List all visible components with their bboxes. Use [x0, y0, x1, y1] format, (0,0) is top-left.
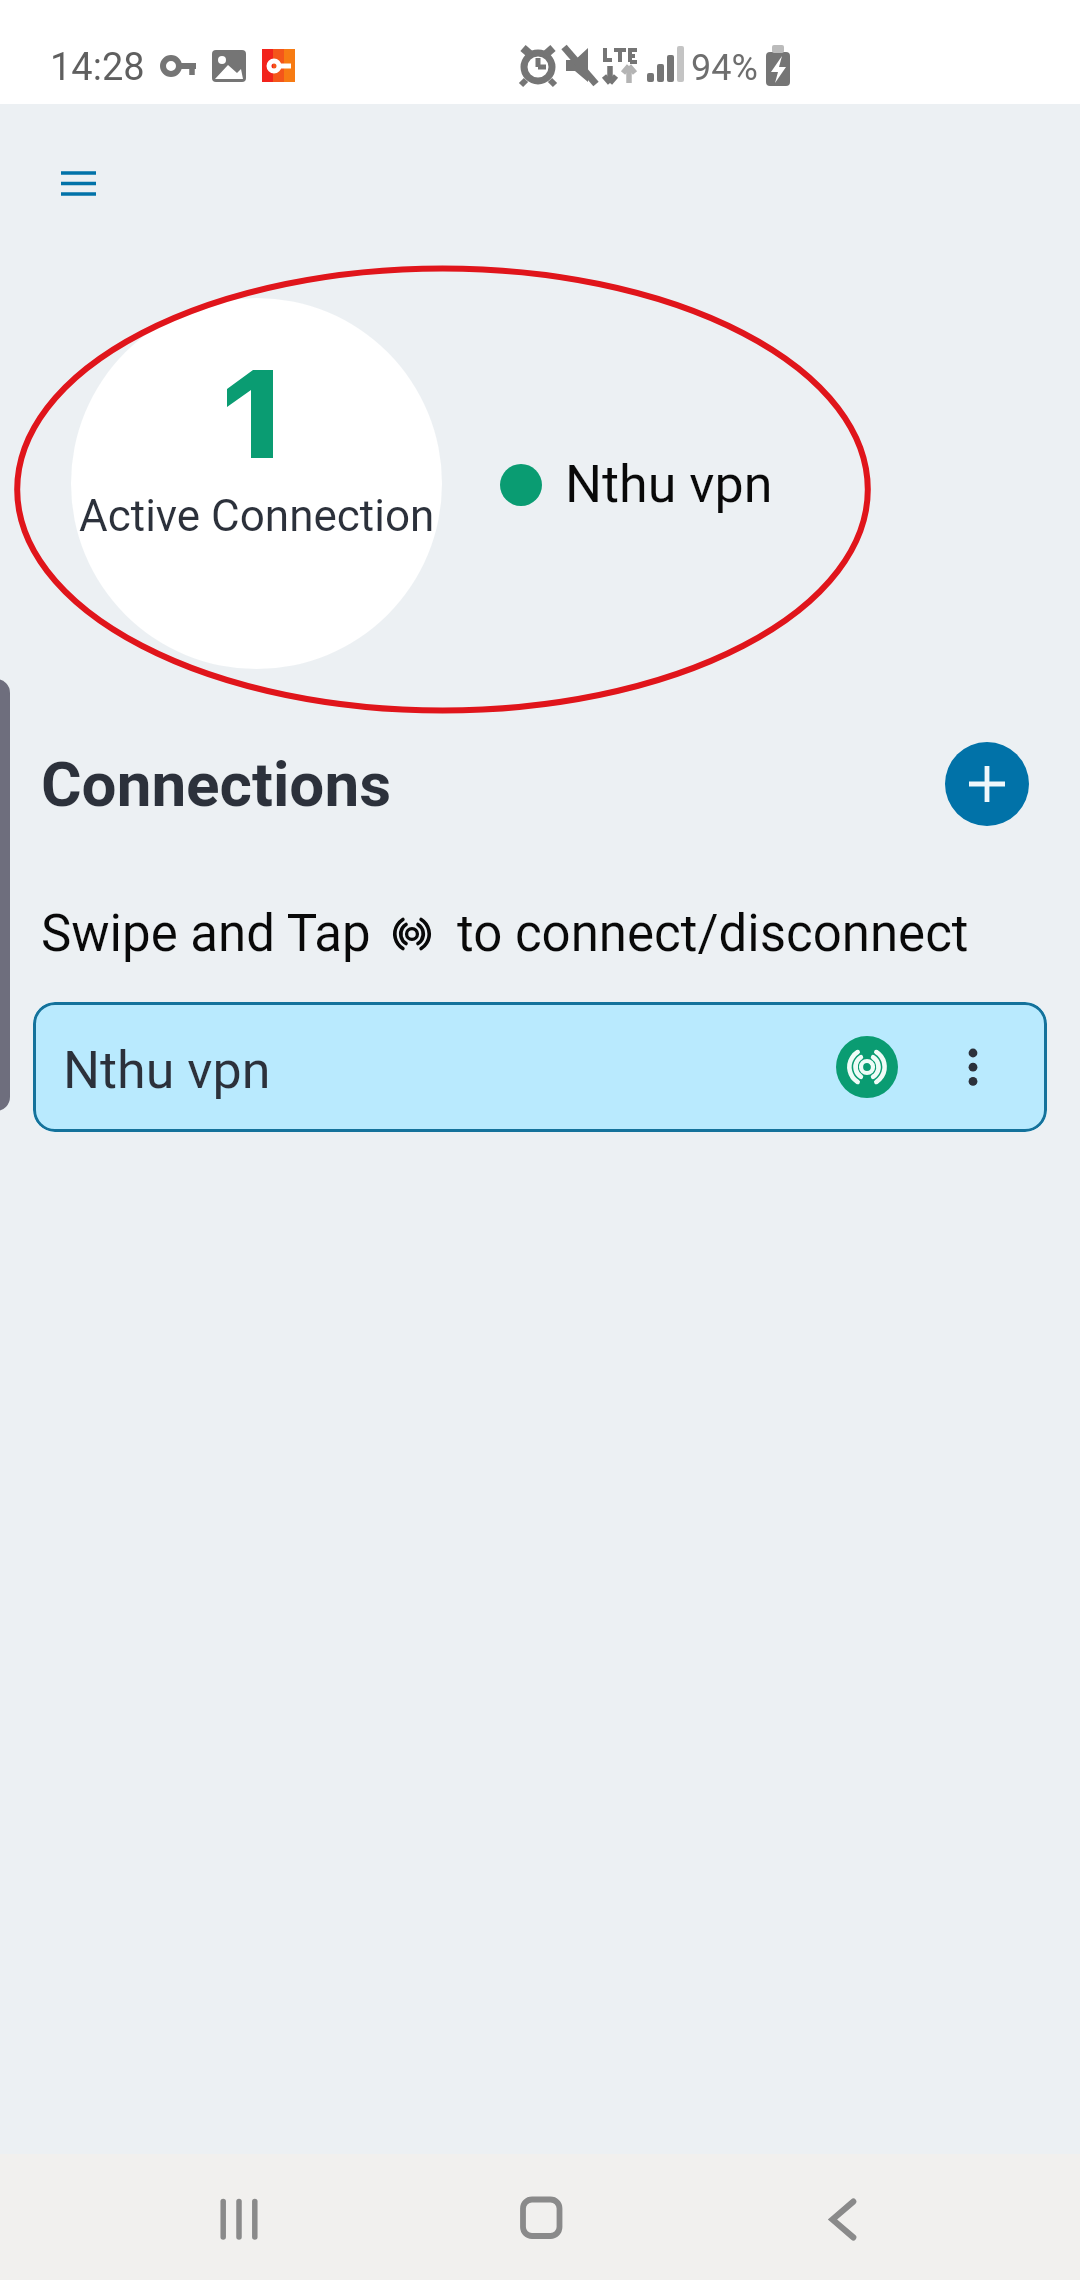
- button[interactable]: Home: [481, 2174, 601, 2260]
- staticText: Connections: [41, 748, 392, 821]
- staticText: 94%: [691, 47, 758, 89]
- staticText: 14:28: [50, 45, 145, 90]
- staticText: Swipe and Tap: [41, 904, 371, 964]
- staticText: Nthu vpn: [565, 454, 773, 515]
- button[interactable]: Open navigation menu: [37, 144, 121, 228]
- button[interactable]: Back: [783, 2174, 903, 2260]
- button[interactable]: Toggle connection: [836, 1036, 898, 1098]
- button[interactable]: Add connection: [945, 742, 1029, 826]
- staticText: Active Connection: [79, 490, 435, 542]
- button[interactable]: Nthu vpn: [33, 1002, 1047, 1132]
- staticText: to connect/disconnect: [457, 904, 969, 964]
- button[interactable]: Recent apps: [180, 2174, 300, 2260]
- button[interactable]: More options: [938, 1032, 1008, 1102]
- staticText: Nthu vpn: [63, 1040, 271, 1101]
